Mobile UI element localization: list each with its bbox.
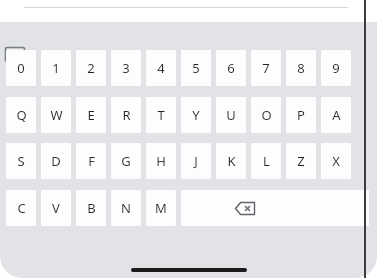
button[interactable]: 7 [251, 50, 281, 86]
staticText: R [122, 106, 131, 124]
button[interactable]: 5 [181, 50, 211, 86]
staticText: C [17, 199, 26, 217]
staticText: 8 [297, 59, 305, 77]
button[interactable]: P [286, 97, 316, 133]
staticText: A [332, 106, 341, 124]
button[interactable]: U [216, 97, 246, 133]
staticText: 2 [87, 59, 95, 77]
staticText: Z [297, 152, 305, 170]
button[interactable]: 3 [111, 50, 141, 86]
button[interactable]: E [76, 97, 106, 133]
staticText: 6 [227, 59, 235, 77]
staticText: N [121, 199, 131, 217]
staticText: F [88, 152, 95, 170]
button[interactable]: A [321, 97, 351, 133]
staticText: T [157, 106, 165, 124]
button[interactable]: K [216, 143, 246, 179]
staticText: G [121, 152, 131, 170]
staticText: L [263, 152, 270, 170]
button[interactable]: F [76, 143, 106, 179]
staticText: 1 [52, 59, 60, 77]
button[interactable]: L [251, 143, 281, 179]
button[interactable]: V [41, 190, 71, 226]
staticText: Y [192, 106, 200, 124]
staticText: H [156, 152, 166, 170]
button[interactable]: Backspace [181, 190, 369, 226]
staticText: D [51, 152, 61, 170]
staticText: P [297, 106, 305, 124]
button[interactable]: B [76, 190, 106, 226]
staticText: J [194, 152, 198, 170]
button[interactable]: C [6, 190, 36, 226]
staticText: K [227, 152, 236, 170]
staticText: 7 [262, 59, 270, 77]
button[interactable]: 6 [216, 50, 246, 86]
button[interactable]: R [111, 97, 141, 133]
staticText: W [50, 106, 63, 124]
button[interactable]: W [41, 97, 71, 133]
button[interactable]: Q [6, 97, 36, 133]
staticText: O [261, 106, 272, 124]
staticText: X [332, 152, 340, 170]
button[interactable]: X [321, 143, 351, 179]
button[interactable]: 8 [286, 50, 316, 86]
button[interactable]: S [6, 143, 36, 179]
staticText: 0 [17, 59, 25, 77]
staticText: M [155, 199, 167, 217]
staticText: 3 [122, 59, 130, 77]
staticText: V [52, 199, 60, 217]
button[interactable]: M [146, 190, 176, 226]
button[interactable]: H [146, 143, 176, 179]
button[interactable]: D [41, 143, 71, 179]
button[interactable]: 2 [76, 50, 106, 86]
button[interactable]: 1 [41, 50, 71, 86]
staticText: 5 [192, 59, 200, 77]
button[interactable]: T [146, 97, 176, 133]
staticText: E [87, 106, 95, 124]
button[interactable]: O [251, 97, 281, 133]
button[interactable]: Y [181, 97, 211, 133]
staticText: B [87, 199, 96, 217]
button[interactable]: J [181, 143, 211, 179]
staticText: 4 [157, 59, 165, 77]
staticText: Q [16, 106, 27, 124]
button[interactable]: N [111, 190, 141, 226]
staticText: S [17, 152, 25, 170]
button[interactable]: Switch keyboard [5, 47, 25, 65]
staticText: U [226, 106, 236, 124]
button[interactable]: 0 [6, 50, 36, 86]
button[interactable]: 9 [321, 50, 351, 86]
button[interactable]: G [111, 143, 141, 179]
button[interactable]: Z [286, 143, 316, 179]
staticText: 9 [332, 59, 340, 77]
button[interactable]: 4 [146, 50, 176, 86]
